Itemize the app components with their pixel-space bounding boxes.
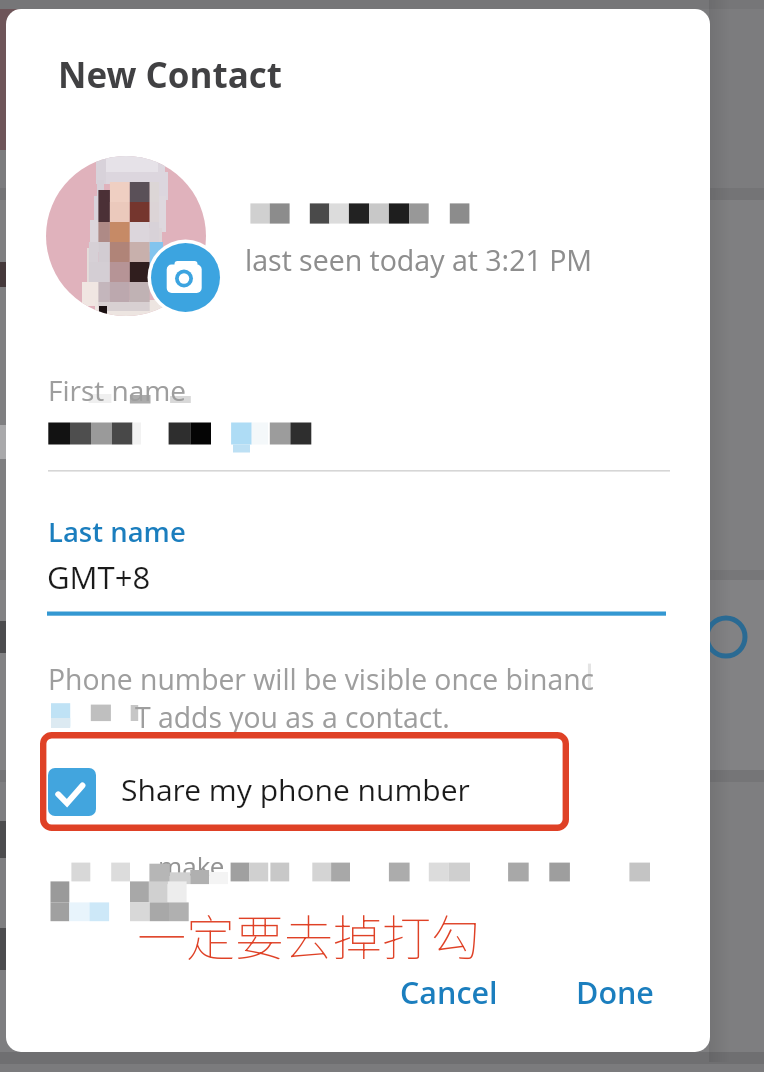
staticText: Phone number will be visible once binanc (48, 660, 594, 699)
button[interactable]: Share my phone number (44, 758, 500, 826)
staticText: T adds you as a contact. (135, 698, 450, 737)
staticText: First name (48, 371, 186, 409)
staticText: Done (576, 971, 654, 1013)
button[interactable]: Done (560, 962, 670, 1020)
staticText: New Contact (58, 51, 282, 99)
button[interactable]: Change profile photo (46, 156, 220, 316)
button[interactable]: Cancel (383, 962, 515, 1020)
staticText: Share my phone number (121, 769, 470, 810)
staticText: Cancel (400, 971, 498, 1013)
staticText: make (158, 848, 225, 883)
button[interactable]: First name field (47, 372, 670, 472)
button[interactable]: Last name field (47, 514, 667, 616)
staticText: 一定要去掉打勾 (137, 899, 481, 970)
staticText: Last name (48, 513, 186, 550)
staticText: GMT+8 (47, 556, 151, 598)
staticText: last seen today at 3:21 PM (245, 241, 593, 280)
